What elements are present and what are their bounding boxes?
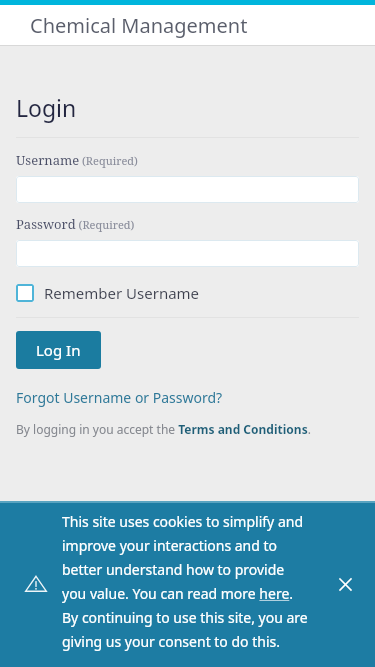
staticText: Username (Required) [16,151,138,169]
button[interactable]: Forgot Username or Password? [16,388,223,407]
button[interactable]: Remember Username [16,283,200,303]
button[interactable]: Close [331,570,359,598]
staticText: Forgot Username or Password? [16,388,223,407]
other: Warning [24,572,48,596]
staticText: improve your interactions and to [62,536,278,560]
staticText: Log In [36,340,81,360]
staticText: By continuing to use this site, you are [62,608,308,632]
staticText: This site uses cookies to simplify and [62,512,304,536]
staticText: By logging in you accept the Terms and C… [16,421,311,437]
staticText: Chemical Management [30,12,248,39]
button[interactable]: Log In [16,331,101,369]
staticText: you value. You can read more here. [62,584,294,608]
button[interactable] [16,240,359,267]
staticText: Login [16,92,77,123]
staticText: Password (Required) [16,215,135,233]
staticText: better understand how to provide [62,560,285,584]
staticText: Remember Username [44,283,200,303]
staticText: giving us your consent to do this. [62,632,280,656]
button[interactable] [16,176,359,203]
